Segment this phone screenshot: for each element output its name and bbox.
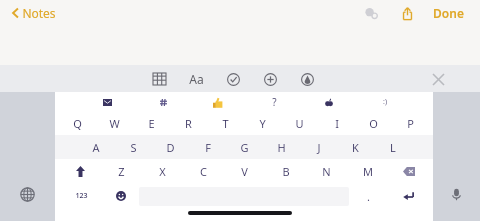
- button[interactable]: Delete: [388, 159, 429, 183]
- staticText: Z: [118, 164, 125, 179]
- staticText: ?: [272, 95, 277, 109]
- staticText: Aa: [189, 71, 204, 87]
- button[interactable]: S: [115, 135, 152, 159]
- button[interactable]: Notes: [8, 3, 60, 23]
- staticText: K: [352, 140, 359, 155]
- staticText: M: [363, 164, 373, 179]
- button[interactable]: Hide keyboard: [426, 67, 450, 91]
- button[interactable]: L: [374, 135, 411, 159]
- staticText: I: [335, 116, 339, 131]
- staticText: L: [390, 140, 396, 155]
- button[interactable]: G: [226, 135, 263, 159]
- button[interactable]: 123: [59, 183, 103, 209]
- button[interactable]: Z: [101, 159, 142, 183]
- staticText: U: [295, 116, 304, 131]
- button[interactable]: [95, 93, 119, 111]
- staticText: R: [185, 116, 192, 131]
- button[interactable]: [151, 93, 175, 111]
- staticText: Notes: [22, 5, 56, 21]
- staticText: B: [282, 164, 290, 179]
- button[interactable]: J: [300, 135, 337, 159]
- button[interactable]: R: [170, 111, 207, 135]
- button[interactable]: [206, 93, 230, 111]
- staticText: H: [277, 140, 286, 155]
- staticText: G: [240, 140, 249, 155]
- button[interactable]: Checklist: [221, 67, 245, 91]
- button[interactable]: C: [183, 159, 224, 183]
- staticText: V: [241, 164, 248, 179]
- button[interactable]: Next keyboard: [0, 176, 55, 212]
- button[interactable]: K: [337, 135, 374, 159]
- staticText: Done: [433, 5, 464, 21]
- button[interactable]: D: [152, 135, 189, 159]
- staticText: :): [383, 97, 387, 107]
- button[interactable]: T: [207, 111, 244, 135]
- staticText: J: [317, 140, 321, 155]
- button[interactable]: F: [189, 135, 226, 159]
- staticText: D: [166, 140, 175, 155]
- button[interactable]: V: [224, 159, 265, 183]
- button[interactable]: E: [133, 111, 170, 135]
- button[interactable]: I: [318, 111, 355, 135]
- button[interactable]: P: [392, 111, 429, 135]
- button[interactable]: N: [306, 159, 347, 183]
- button[interactable]: Return: [387, 183, 429, 209]
- button[interactable]: Dictate: [433, 176, 480, 212]
- staticText: S: [130, 140, 137, 155]
- staticText: Y: [259, 116, 266, 131]
- button[interactable]: Share: [395, 1, 419, 25]
- button[interactable]: O: [355, 111, 392, 135]
- button[interactable]: Table: [147, 67, 171, 91]
- button[interactable]: Y: [244, 111, 281, 135]
- button[interactable]: W: [96, 111, 133, 135]
- button[interactable]: [317, 93, 341, 111]
- button[interactable]: H: [263, 135, 300, 159]
- staticText: E: [148, 116, 155, 131]
- staticText: F: [205, 140, 211, 155]
- button[interactable]: :): [373, 93, 397, 111]
- button[interactable]: Emoji: [103, 183, 139, 209]
- staticText: Q: [73, 116, 82, 131]
- staticText: T: [222, 116, 229, 131]
- button[interactable]: ?: [262, 93, 286, 111]
- staticText: P: [407, 116, 414, 131]
- button[interactable]: Add attachment: [258, 67, 282, 91]
- button[interactable]: X: [142, 159, 183, 183]
- staticText: .: [367, 189, 370, 204]
- staticText: W: [109, 116, 120, 131]
- staticText: N: [322, 164, 331, 179]
- button[interactable]: Q: [59, 111, 96, 135]
- button[interactable]: Collaborate: [359, 1, 383, 25]
- button[interactable]: Done: [429, 3, 468, 23]
- staticText: C: [200, 164, 207, 179]
- button[interactable]: Aa: [184, 67, 208, 91]
- staticText: O: [369, 116, 378, 131]
- button[interactable]: U: [281, 111, 318, 135]
- button[interactable]: B: [265, 159, 306, 183]
- staticText: X: [159, 164, 166, 179]
- button[interactable]: .: [349, 183, 387, 209]
- staticText: A: [92, 140, 100, 155]
- button[interactable]: M: [347, 159, 388, 183]
- button[interactable]: A: [77, 135, 115, 159]
- button[interactable]: Shift: [59, 159, 101, 183]
- button[interactable]: Markup: [295, 67, 319, 91]
- staticText: 123: [75, 191, 88, 201]
